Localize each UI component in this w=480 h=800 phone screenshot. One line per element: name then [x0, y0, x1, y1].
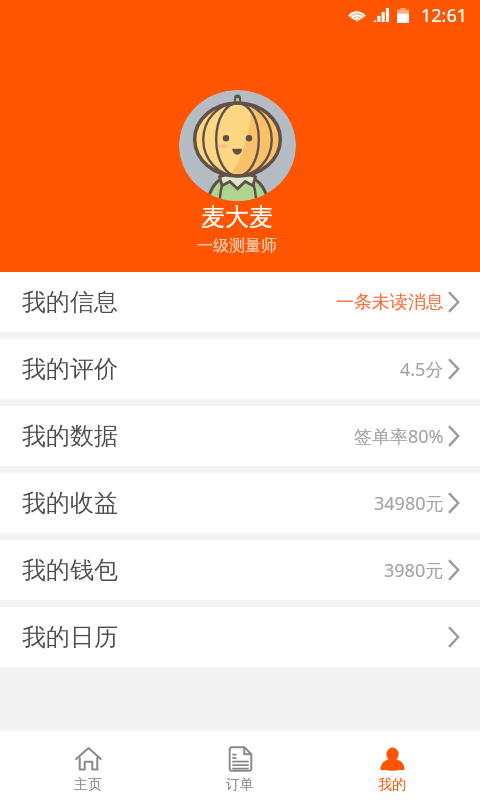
staticText: 我的评价: [22, 354, 118, 384]
staticText: 3980元: [384, 558, 444, 583]
staticText: 我的收益: [22, 488, 118, 518]
button[interactable]: 我的: [316, 731, 468, 800]
staticText: 订单: [226, 776, 254, 794]
staticText: 麦大麦: [201, 202, 273, 232]
button[interactable]: 我的钱包: [0, 540, 480, 600]
staticText: 34980元: [374, 491, 444, 516]
staticText: 我的: [378, 776, 406, 794]
button[interactable]: 主页: [12, 731, 164, 800]
button[interactable]: 订单: [164, 731, 316, 800]
staticText: 我的信息: [22, 287, 118, 317]
button[interactable]: 我的日历: [0, 607, 480, 667]
button[interactable]: 我的信息: [0, 272, 480, 332]
staticText: 我的钱包: [22, 555, 118, 585]
staticText: 我的数据: [22, 421, 118, 451]
staticText: 主页: [74, 776, 102, 794]
staticText: 12:61: [421, 3, 468, 28]
staticText: 我的日历: [22, 622, 118, 652]
button[interactable]: 我的数据: [0, 406, 480, 466]
button[interactable]: 我的评价: [0, 339, 480, 399]
staticText: 一条未读消息: [336, 291, 444, 314]
staticText: 签单率80%: [354, 424, 444, 449]
staticText: 一级测量师: [197, 236, 277, 256]
button[interactable]: 我的收益: [0, 473, 480, 533]
staticText: 4.5分: [400, 357, 444, 382]
